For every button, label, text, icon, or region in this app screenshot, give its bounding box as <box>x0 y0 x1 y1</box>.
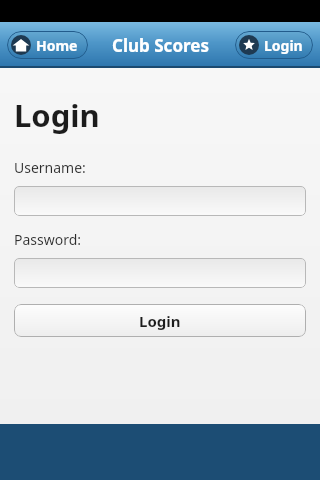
staticText: Login <box>14 94 100 136</box>
staticText: Login <box>264 36 303 55</box>
button[interactable]: Text input <box>14 258 306 288</box>
button[interactable]: Login <box>14 304 306 337</box>
staticText: Login <box>139 311 181 331</box>
staticText: Home <box>36 36 78 55</box>
staticText: Club Scores <box>112 34 209 57</box>
button[interactable]: Text input <box>14 186 306 216</box>
staticText: Username: <box>14 158 86 177</box>
staticText: Password: <box>14 230 82 249</box>
button[interactable]: Login <box>235 31 313 59</box>
button[interactable]: Home <box>7 31 88 59</box>
